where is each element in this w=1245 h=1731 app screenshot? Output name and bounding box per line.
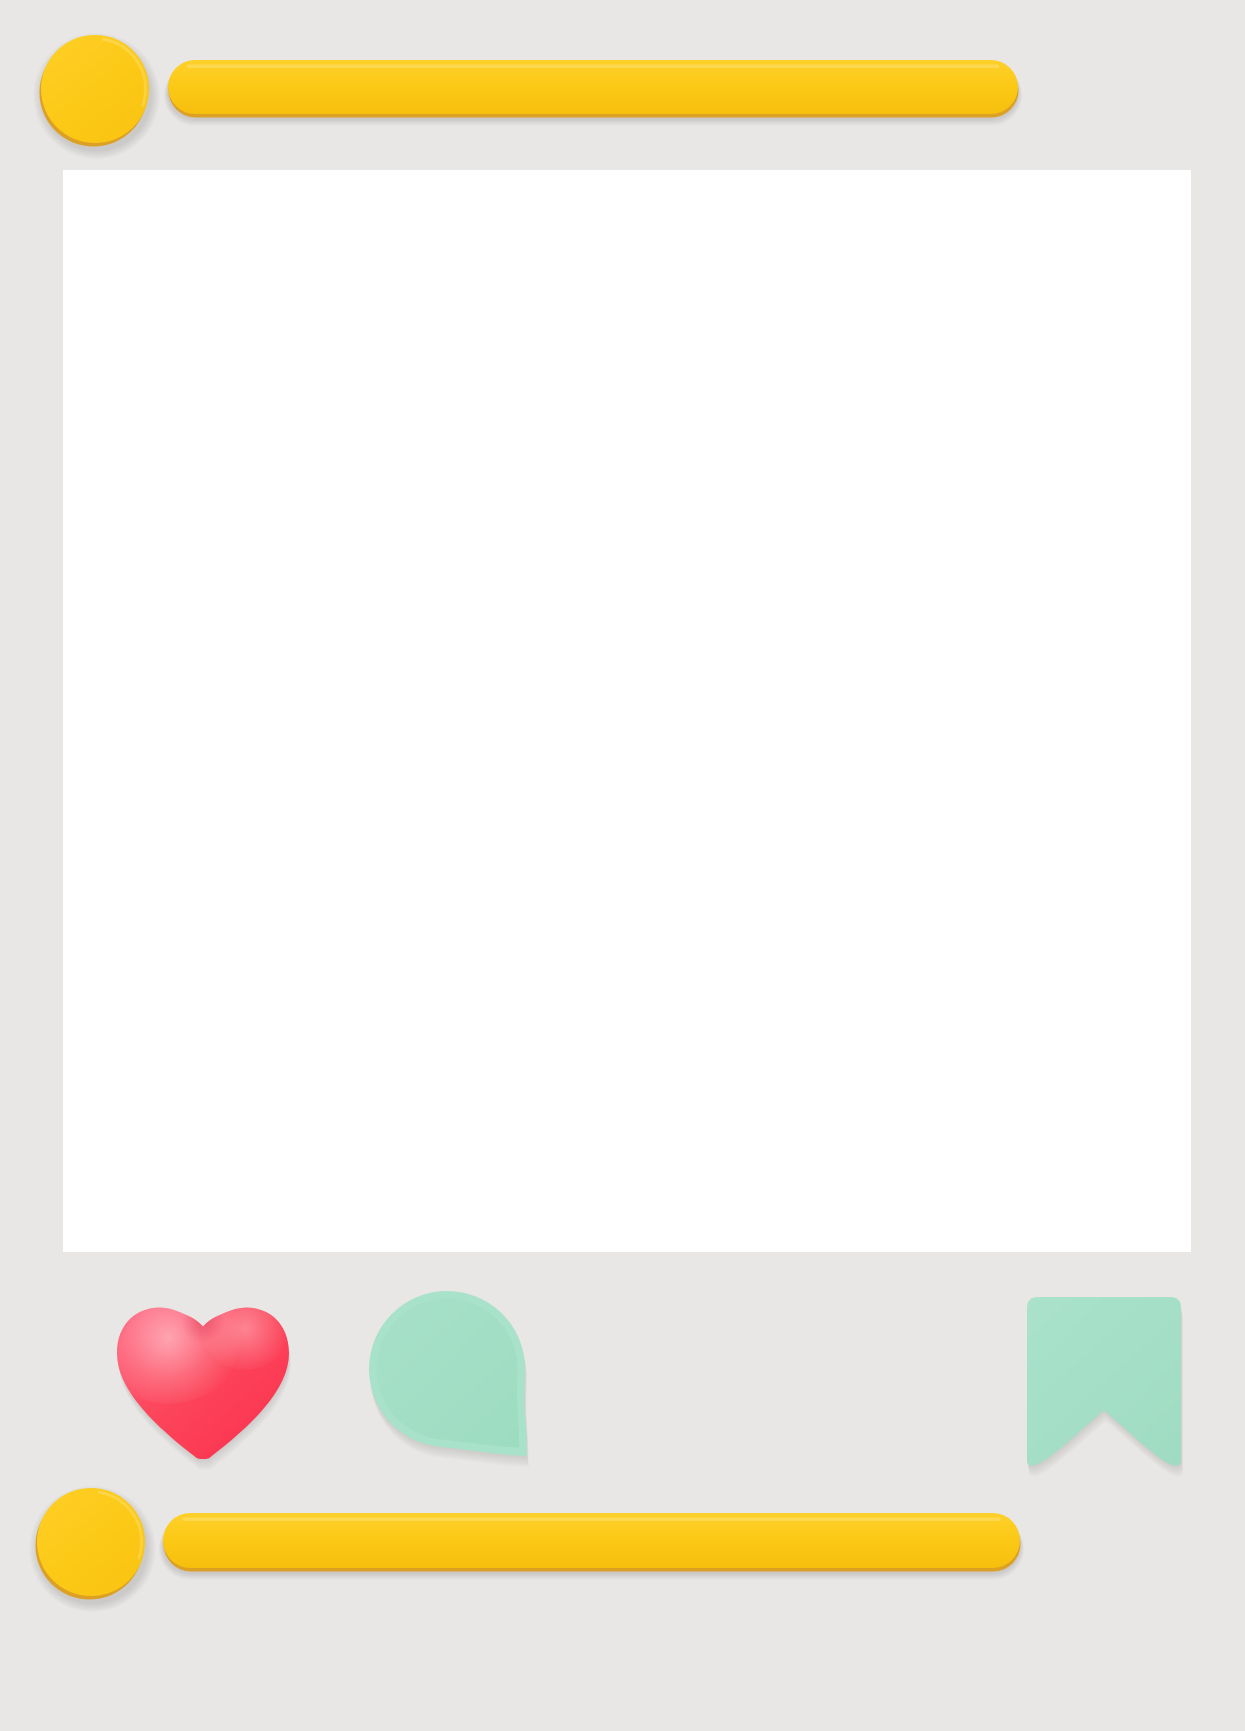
button[interactable]: Add a comment	[155, 1497, 1028, 1584]
button[interactable]: Profile picture	[33, 19, 157, 159]
button[interactable]: Save	[1019, 1281, 1189, 1483]
button[interactable]: Comment	[361, 1275, 535, 1472]
button[interactable]: Like	[109, 1288, 297, 1476]
button[interactable]: User name	[160, 44, 1026, 130]
button[interactable]: Your profile picture	[29, 1472, 153, 1612]
